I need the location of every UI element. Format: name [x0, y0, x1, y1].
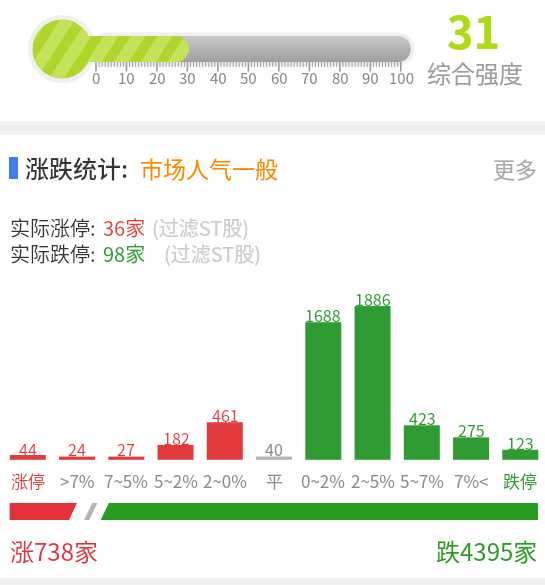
staticText: 182 — [163, 426, 190, 449]
staticText: 实际跌停: — [10, 239, 96, 268]
staticText: (过滤ST股) — [164, 239, 261, 268]
staticText: 27 — [117, 437, 135, 460]
staticText: 80 — [332, 67, 349, 89]
staticText: 60 — [271, 67, 288, 89]
staticText: 5~2% — [154, 468, 198, 493]
staticText: 461 — [212, 403, 239, 426]
staticText: 跌停 — [503, 468, 537, 493]
staticText: 7~5% — [104, 468, 148, 493]
staticText: 0 — [92, 67, 101, 89]
staticText: 更多 — [493, 152, 538, 184]
staticText: 平 — [266, 468, 283, 493]
staticText: 实际涨停: — [10, 213, 96, 242]
staticText: 跌4395家 — [436, 533, 538, 568]
staticText: 100 — [389, 67, 414, 89]
staticText: 36家 — [103, 213, 146, 242]
staticText: 98家 — [103, 239, 146, 268]
staticText: 70 — [301, 67, 318, 89]
staticText: 31 — [447, 0, 501, 62]
staticText: 2~5% — [351, 468, 395, 493]
staticText: 1886 — [355, 287, 391, 310]
staticText: 30 — [179, 67, 196, 89]
staticText: 90 — [362, 67, 379, 89]
staticText: >7% — [60, 468, 95, 493]
staticText: 123 — [507, 431, 534, 454]
staticText: 423 — [409, 406, 436, 429]
staticText: 40 — [210, 67, 227, 89]
staticText: 24 — [68, 437, 86, 460]
staticText: 275 — [458, 418, 485, 441]
staticText: 7%< — [454, 468, 489, 493]
staticText: 市场人气一般 — [140, 151, 278, 184]
staticText: 5~7% — [400, 468, 444, 493]
staticText: 50 — [240, 67, 257, 89]
staticText: 44 — [19, 437, 37, 460]
staticText: 涨跌统计: — [25, 150, 129, 185]
staticText: 0~2% — [301, 468, 345, 493]
staticText: 20 — [149, 67, 166, 89]
staticText: 综合强度 — [427, 55, 523, 90]
staticText: 10 — [118, 67, 135, 89]
staticText: 40 — [265, 437, 283, 460]
staticText: 2~0% — [203, 468, 247, 493]
staticText: 涨停 — [11, 468, 45, 493]
staticText: 1688 — [305, 303, 341, 326]
button[interactable]: 更多 — [278, 152, 538, 184]
staticText: 涨738家 — [10, 533, 98, 568]
staticText: (过滤ST股) — [152, 213, 249, 242]
